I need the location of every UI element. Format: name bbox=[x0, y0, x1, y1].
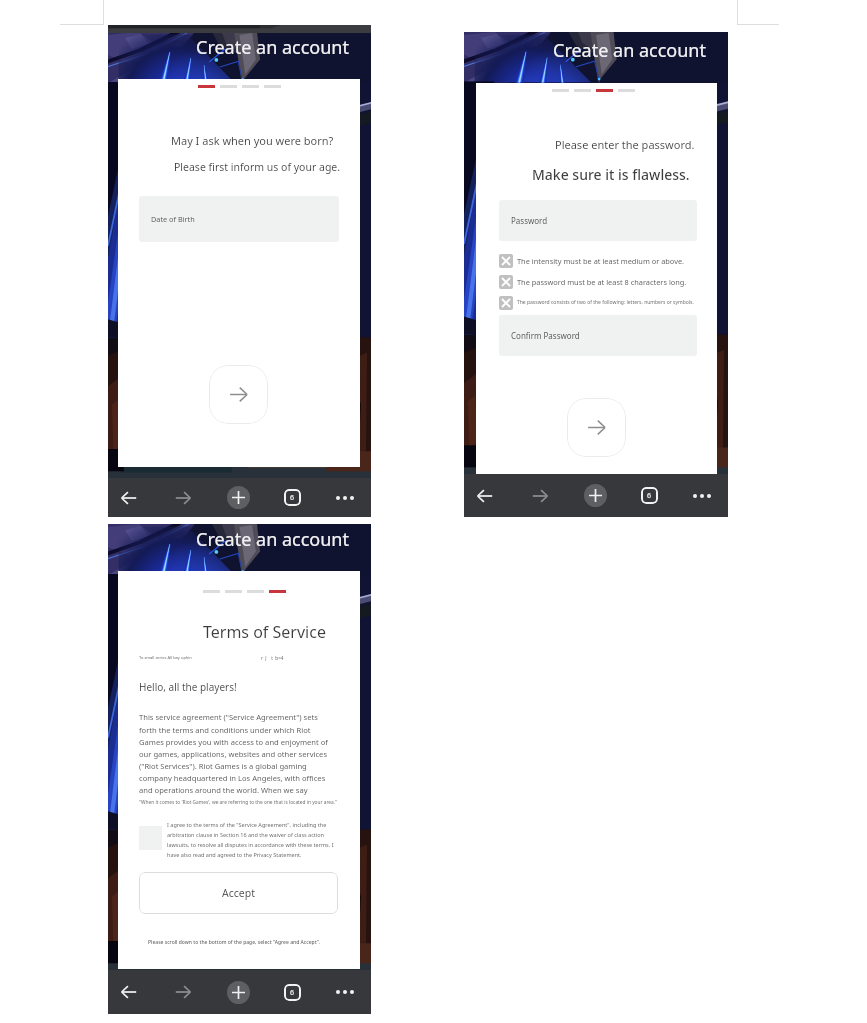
button[interactable]: Back bbox=[464, 474, 516, 517]
button[interactable]: Next bbox=[567, 398, 626, 457]
staticText: Create an account bbox=[196, 527, 349, 552]
button[interactable]: Tabs bbox=[622, 474, 675, 517]
button[interactable]: New tab bbox=[212, 970, 265, 1014]
button[interactable]: Date of Birth bbox=[139, 196, 339, 242]
staticText: May I ask when you were born? bbox=[171, 133, 334, 148]
staticText: Terms of Service bbox=[203, 621, 326, 643]
button[interactable]: More options bbox=[318, 478, 371, 517]
staticText: Date of Birth bbox=[151, 214, 195, 224]
button[interactable]: Next bbox=[209, 365, 268, 424]
button[interactable]: Confirm Password bbox=[499, 315, 697, 356]
staticText: Create an account bbox=[196, 35, 349, 60]
button[interactable]: More options bbox=[318, 970, 371, 1014]
staticText: I agree to the terms of the "Service Agr… bbox=[167, 821, 340, 858]
button[interactable]: Tabs bbox=[265, 478, 318, 517]
staticText: The password consists of two of the foll… bbox=[517, 299, 694, 306]
staticText: 6 bbox=[290, 988, 295, 998]
staticText: Password bbox=[511, 215, 548, 226]
staticText: 6 bbox=[647, 491, 652, 501]
staticText: Make sure it is flawless. bbox=[532, 165, 690, 184]
button[interactable]: New tab bbox=[212, 478, 265, 517]
staticText: To small series All bay uphin bbox=[139, 655, 192, 660]
staticText: Hello, all the players! bbox=[139, 680, 237, 694]
staticText: "When it comes to 'Riot Games', we are r… bbox=[139, 799, 337, 806]
staticText: Confirm Password bbox=[511, 330, 580, 341]
button[interactable]: Accept bbox=[139, 872, 338, 914]
staticText: The intensity must be at least medium or… bbox=[517, 256, 685, 266]
staticText: Create an account bbox=[553, 38, 706, 63]
button[interactable]: Back bbox=[108, 478, 160, 517]
staticText: 6 bbox=[290, 493, 295, 503]
button[interactable]: Forward bbox=[516, 474, 569, 517]
staticText: Please scroll down to the bottom of the … bbox=[148, 939, 321, 946]
button[interactable]: More options bbox=[675, 474, 728, 517]
staticText: Please enter the password. bbox=[555, 137, 695, 152]
button[interactable]: Tabs bbox=[265, 970, 318, 1014]
staticText: Please first inform us of your age. bbox=[174, 160, 341, 174]
button[interactable]: Forward bbox=[160, 970, 212, 1014]
staticText: r J t b=4 bbox=[261, 655, 284, 661]
button[interactable]: Forward bbox=[160, 478, 212, 517]
button[interactable]: Back bbox=[108, 970, 160, 1014]
button[interactable]: Password bbox=[499, 200, 697, 241]
staticText: The password must be at least 8 characte… bbox=[517, 277, 687, 287]
staticText: This service agreement ("Service Agreeme… bbox=[139, 712, 329, 795]
staticText: Accept bbox=[222, 886, 255, 900]
button[interactable]: New tab bbox=[569, 474, 622, 517]
